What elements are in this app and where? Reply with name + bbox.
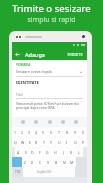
button[interactable]: R [33,137,40,147]
button[interactable]: Keyboard tool [48,120,52,124]
staticText: U [58,140,61,145]
staticText: 4 [35,130,38,135]
button[interactable]: Shift [12,157,22,167]
staticText: N [63,160,66,165]
button[interactable]: Space [23,167,66,177]
staticText: B [55,160,58,165]
button[interactable]: S [22,147,29,157]
staticText: O [74,140,77,145]
staticText: 8 [66,130,69,135]
button[interactable]: Keyboard tool [74,120,78,124]
staticText: S [25,150,27,155]
button[interactable]: Q [12,137,19,147]
staticText: Z [24,160,27,165]
button[interactable]: Keyboard tool [34,120,38,124]
button[interactable]: A [15,147,22,157]
button[interactable]: W [19,137,26,147]
button[interactable]: Back [12,49,22,59]
staticText: IDENTITATE [16,80,39,85]
button[interactable]: P [79,137,87,147]
button[interactable]: U [55,137,63,147]
staticText: E [29,140,31,145]
staticText: TRIMITE [67,52,83,57]
button[interactable]: E [26,137,33,147]
staticText: X [31,160,34,165]
staticText: Sesizare cireva legala [16,69,52,74]
button[interactable]: H [51,147,59,157]
button[interactable]: C [36,157,44,167]
staticText: I [66,140,68,145]
staticText: Q [14,140,17,145]
button[interactable]: M [68,157,76,167]
staticText: A [17,150,20,155]
button[interactable]: Z [22,157,29,167]
staticText: ?123 [15,170,21,174]
staticText: PRIMARIA [16,63,31,67]
staticText: M [70,160,74,165]
button[interactable]: Symbols [12,167,23,177]
staticText: T [43,140,45,145]
staticText: F [39,150,41,155]
staticText: D [31,150,34,155]
button[interactable]: 4 [33,127,40,137]
staticText: 7 [58,130,61,135]
button[interactable]: 0 [79,127,87,137]
staticText: 9 [74,130,77,135]
staticText: V [47,160,50,165]
button[interactable]: O [71,137,79,147]
staticText: P [82,140,85,145]
button[interactable]: B [52,157,60,167]
staticText: English (US) [37,170,52,174]
button[interactable]: 3 [26,127,33,137]
button[interactable]: 9 [71,127,79,137]
staticText: H [54,150,57,155]
staticText: Viteza mult peste 30 Km/h pe bulevardul … [16,101,83,109]
button[interactable]: 5 [40,127,47,137]
staticText: G [46,150,49,155]
staticText: Trimite o sesizare [0,2,103,15]
staticText: L [78,150,80,155]
button[interactable]: Keyboard tool [61,120,65,124]
button[interactable]: V [44,157,52,167]
button[interactable]: L [75,147,83,157]
button[interactable]: 7 [55,127,63,137]
staticText: 6 [50,130,53,135]
button[interactable]: 1 [12,127,19,137]
button[interactable]: Y [47,137,55,147]
staticText: K [70,150,73,155]
button[interactable]: D [29,147,36,157]
staticText: 0 [82,130,85,135]
button[interactable]: TRIMITE [67,52,83,57]
staticText: W [21,140,25,145]
staticText: 1 [14,130,17,135]
button[interactable]: F [36,147,43,157]
staticText: Titlul [16,93,23,97]
button[interactable]: K [67,147,75,157]
staticText: 2 [21,130,24,135]
button[interactable]: 8 [63,127,71,137]
button[interactable]: 2 [19,127,26,137]
button[interactable]: T [40,137,47,147]
button[interactable]: N [60,157,68,167]
staticText: Adauga [25,51,45,58]
button[interactable]: J [59,147,67,157]
button[interactable]: X [29,157,36,167]
button[interactable]: G [43,147,51,157]
staticText: R [35,140,38,145]
staticText: J [63,150,64,155]
staticText: 3 [28,130,31,135]
staticText: simplu si rapid [0,15,103,25]
staticText: C [39,160,42,165]
button[interactable]: 6 [47,127,55,137]
button[interactable]: I [63,137,71,147]
staticText: 5 [42,130,45,135]
button[interactable]: Keyboard tool [21,120,25,124]
staticText: Y [50,140,52,145]
